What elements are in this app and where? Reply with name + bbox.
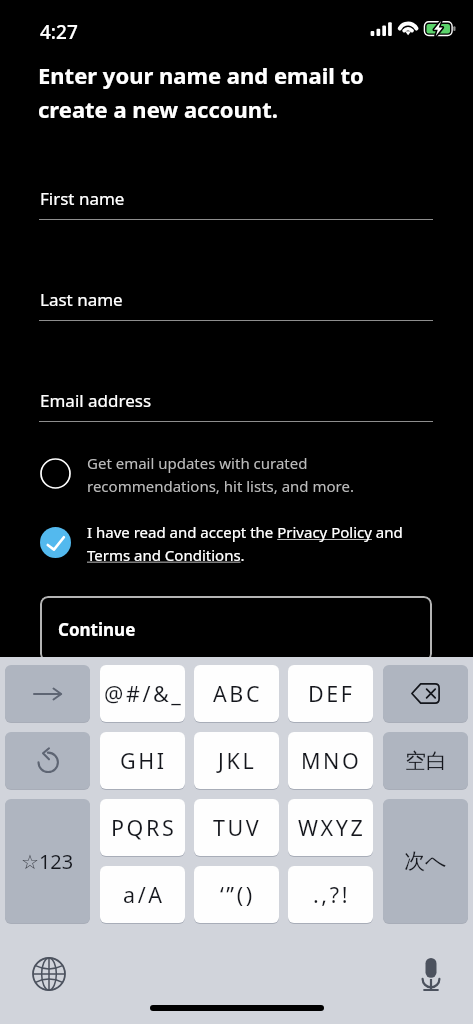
staticText: Last name <box>40 288 123 311</box>
staticText: WXYZ <box>298 813 366 842</box>
staticText: 空白 <box>405 748 447 774</box>
staticText: Get email updates with curated recommend… <box>87 453 433 496</box>
staticText: ☆123 <box>21 848 74 875</box>
staticText: .,?! <box>313 880 351 909</box>
button[interactable]: Change keyboard <box>32 957 66 991</box>
button[interactable]: WXYZ <box>288 799 373 856</box>
button[interactable]: Continue <box>40 596 432 662</box>
staticText: GHI <box>120 746 167 775</box>
button[interactable]: TUV <box>194 799 279 856</box>
button[interactable]: ‘”() <box>194 866 279 923</box>
staticText: MNO <box>301 746 362 775</box>
staticText: Email address <box>40 389 152 412</box>
button[interactable]: DEF <box>288 665 373 722</box>
staticText: TUV <box>213 813 262 842</box>
staticText: DEF <box>308 679 355 708</box>
button[interactable]: JKL <box>194 732 279 789</box>
button[interactable]: ABC <box>194 665 279 722</box>
button[interactable]: PQRS <box>100 799 185 856</box>
button[interactable]: Undo <box>5 732 90 789</box>
staticText: @#/&_ <box>104 679 184 708</box>
button[interactable]: 空白 <box>383 732 468 789</box>
button[interactable]: a/A <box>100 866 185 923</box>
staticText: First name <box>40 187 125 210</box>
button[interactable]: 次へ <box>383 799 468 923</box>
staticText: Enter your name and email to create a ne… <box>38 60 383 124</box>
button[interactable]: .,?! <box>288 866 373 923</box>
staticText: PQRS <box>111 813 177 842</box>
staticText: 次へ <box>404 848 447 874</box>
button[interactable]: MNO <box>288 732 373 789</box>
staticText: Continue <box>58 618 136 641</box>
button[interactable]: I have read and accept the Privacy Polic… <box>40 522 433 565</box>
staticText: 4:27 <box>40 19 78 45</box>
staticText: ABC <box>213 679 263 708</box>
staticText: ‘”() <box>220 880 255 909</box>
button[interactable]: Dictation <box>421 958 441 991</box>
button[interactable]: GHI <box>100 732 185 789</box>
button[interactable]: Move cursor right <box>5 665 90 722</box>
staticText: I have read and accept the Privacy Polic… <box>87 522 433 565</box>
button[interactable]: Backspace <box>383 665 468 722</box>
button[interactable]: Get email updates with curated recommend… <box>40 453 433 496</box>
button[interactable]: ☆123 <box>5 799 90 923</box>
button[interactable]: @#/&_ <box>100 665 185 722</box>
staticText: a/A <box>123 880 165 909</box>
staticText: JKL <box>218 746 257 775</box>
